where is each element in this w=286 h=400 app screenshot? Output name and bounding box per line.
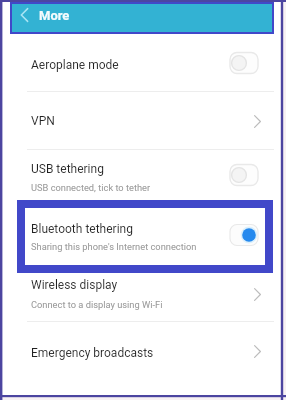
staticText: USB connected, tick to tether (31, 182, 151, 193)
staticText: Bluetooth tethering (31, 222, 133, 236)
staticText: More (39, 8, 70, 23)
button[interactable] (17, 200, 273, 273)
button[interactable]: Open (248, 110, 266, 132)
button[interactable]: Switch on (229, 222, 261, 248)
staticText: Connect to a display using Wi-Fi (31, 299, 163, 310)
button[interactable]: Navigate up (16, 6, 33, 23)
staticText: Aeroplane mode (31, 58, 119, 72)
staticText: Sharing this phone's Internet connection (31, 241, 197, 252)
button[interactable] (0, 150, 286, 207)
staticText: VPN (31, 114, 55, 128)
button[interactable] (0, 322, 286, 379)
button[interactable] (0, 92, 286, 149)
button[interactable] (0, 264, 286, 321)
button[interactable] (0, 34, 286, 91)
staticText: Wireless display (31, 278, 118, 292)
button[interactable]: Switch off (229, 162, 261, 188)
button[interactable] (0, 208, 286, 263)
button[interactable]: Navigate up (12, 4, 272, 32)
button[interactable]: Open (248, 283, 266, 305)
staticText: USB tethering (31, 162, 104, 176)
button[interactable]: Switch off (229, 50, 261, 76)
button[interactable]: Open (248, 340, 266, 362)
staticText: Emergency broadcasts (31, 346, 154, 360)
